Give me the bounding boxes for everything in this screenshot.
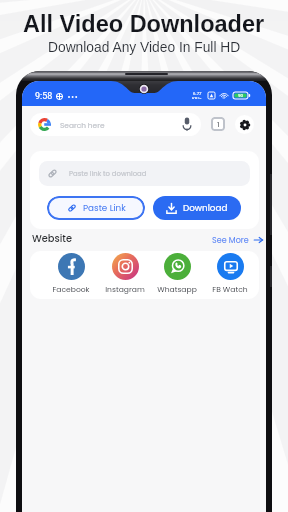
- staticText: KB/s: [192, 96, 202, 99]
- button[interactable]: Facebook: [45, 253, 97, 295]
- staticText: Facebook: [52, 284, 90, 295]
- staticText: See More: [212, 235, 249, 246]
- staticText: Website: [32, 232, 72, 246]
- staticText: FB Watch: [212, 284, 248, 295]
- button[interactable]: See More: [212, 233, 263, 247]
- button[interactable]: Instagram: [99, 253, 151, 295]
- button[interactable]: Paste Link: [47, 196, 145, 220]
- staticText: 6.77: [193, 91, 202, 96]
- button[interactable]: Download: [153, 196, 241, 220]
- staticText: Download Any Video In Full HD: [48, 40, 241, 55]
- staticText: All Video Downloader: [23, 11, 265, 37]
- button[interactable]: Settings: [235, 115, 254, 134]
- staticText: 9:58: [35, 91, 53, 102]
- staticText: 90: [238, 93, 243, 98]
- button[interactable]: Paste link to download: [39, 161, 250, 186]
- staticText: Paste link to download: [69, 169, 147, 179]
- button[interactable]: Search here: [30, 113, 201, 136]
- staticText: Paste Link: [83, 202, 126, 214]
- staticText: Instagram: [105, 284, 145, 295]
- staticText: Search here: [60, 120, 105, 130]
- button[interactable]: Voice search: [177, 114, 196, 133]
- staticText: Download: [183, 202, 228, 214]
- button[interactable]: Whatsapp: [151, 253, 203, 295]
- staticText: 1: [217, 119, 220, 129]
- button[interactable]: 1: [211, 117, 225, 131]
- staticText: Whatsapp: [157, 284, 197, 295]
- button[interactable]: FB Watch: [204, 253, 256, 295]
